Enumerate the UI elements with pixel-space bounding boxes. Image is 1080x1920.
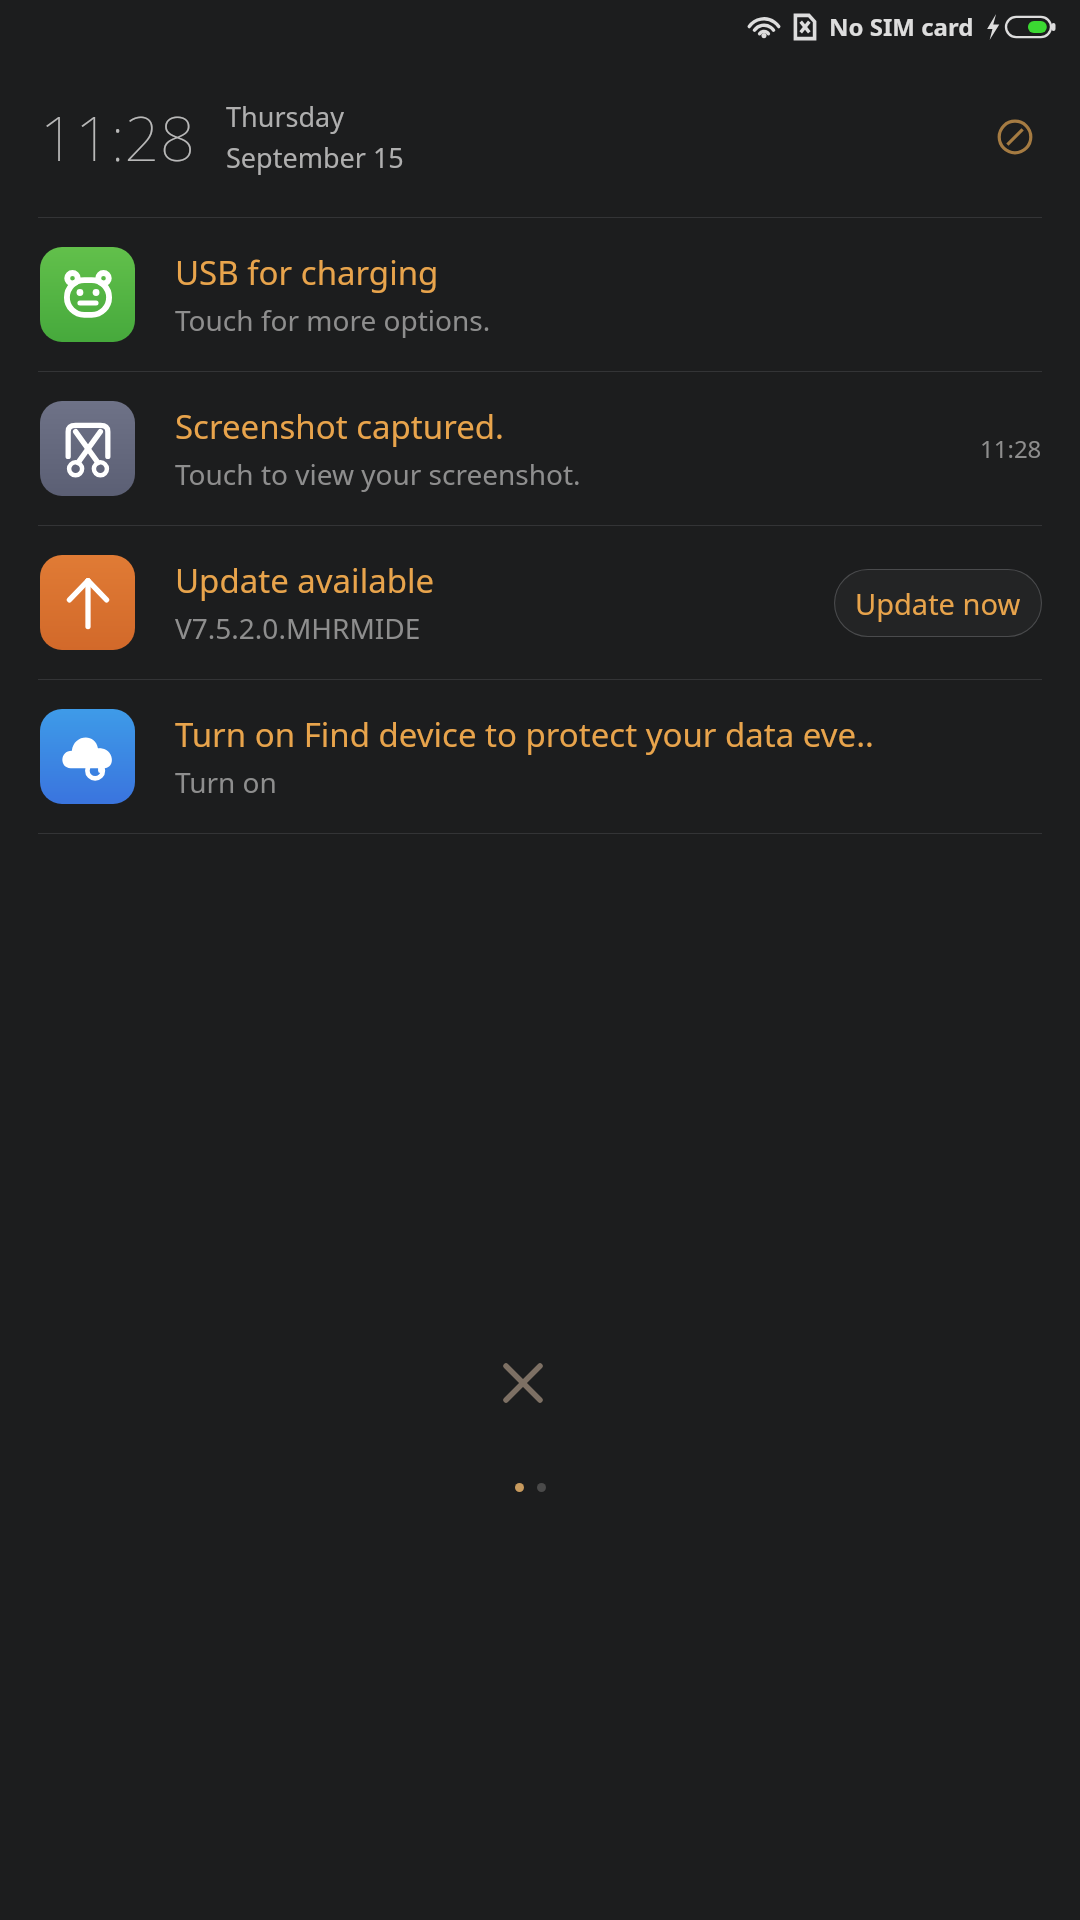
staticText: Screenshot captured. (175, 404, 504, 449)
staticText: Update now (855, 584, 1021, 623)
staticText: V7.5.2.0.MHRMIDE (175, 609, 421, 647)
staticText: 11:28 (980, 432, 1042, 465)
staticText: Turn on Find device to protect your data… (175, 712, 874, 757)
staticText: Turn on (175, 763, 277, 801)
button[interactable]: Update available (0, 526, 1080, 679)
button[interactable]: Update now (834, 569, 1042, 637)
button[interactable]: Turn on Find device to protect your data… (0, 680, 1080, 833)
staticText: Touch to view your screenshot. (175, 455, 581, 493)
staticText: September 15 (226, 139, 404, 176)
button[interactable]: USB for charging (0, 218, 1080, 371)
staticText: Update available (175, 558, 435, 603)
button[interactable]: Clear all notifications (495, 1355, 551, 1411)
staticText: Thursday (226, 98, 344, 135)
staticText: No SIM card (829, 10, 974, 43)
staticText: 11:28 (40, 95, 196, 179)
staticText: Touch for more options. (175, 301, 491, 339)
button[interactable]: Screenshot captured. (0, 372, 1080, 525)
button[interactable]: Do not disturb (988, 110, 1042, 164)
staticText: USB for charging (175, 250, 439, 295)
